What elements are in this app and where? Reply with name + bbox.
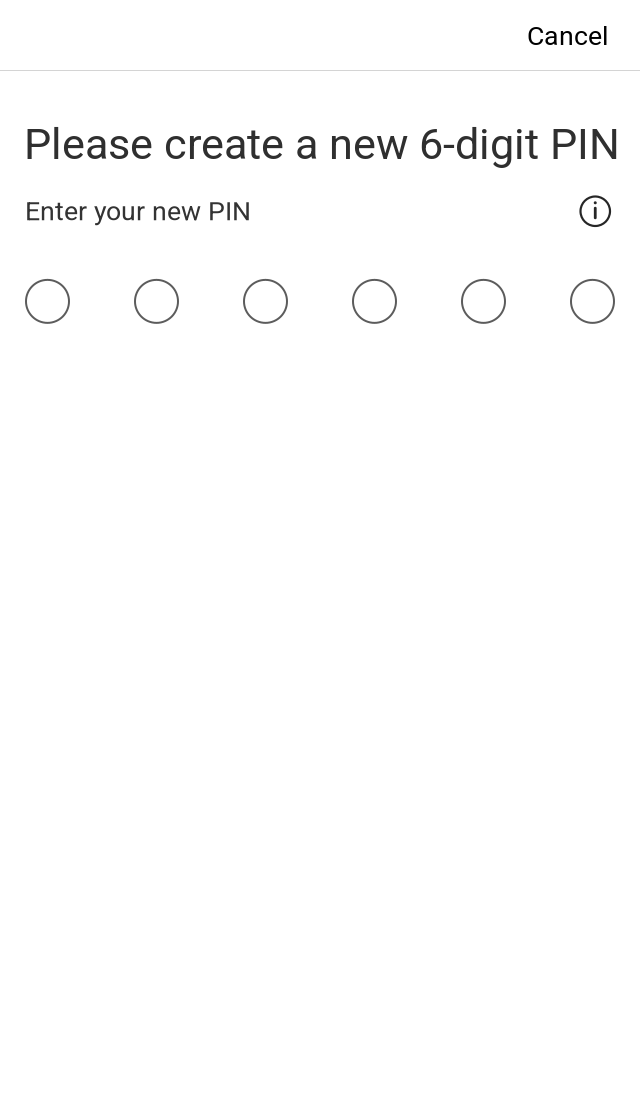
staticText: Enter your new PIN	[25, 196, 251, 227]
staticText: Cancel	[527, 20, 608, 52]
button[interactable]: About PIN requirements	[580, 196, 610, 226]
button[interactable]: New PIN, 6 digits, empty	[26, 280, 614, 323]
staticText: Please create a new 6-digit PIN	[24, 119, 620, 170]
button[interactable]: Cancel	[497, 1, 640, 69]
